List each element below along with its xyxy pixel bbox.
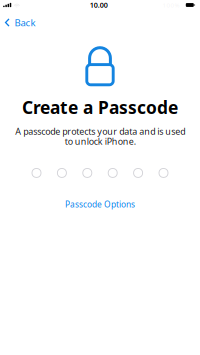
staticText: Create a Passcode — [22, 95, 178, 119]
button[interactable]: Back — [0, 8, 42, 32]
staticText: A passcode protects your data and is use… — [15, 125, 185, 147]
staticText: Passcode Options — [65, 198, 135, 210]
staticText: 10.00 — [90, 0, 108, 10]
button[interactable]: Passcode Options — [57, 195, 143, 213]
staticText: Back — [15, 16, 36, 29]
